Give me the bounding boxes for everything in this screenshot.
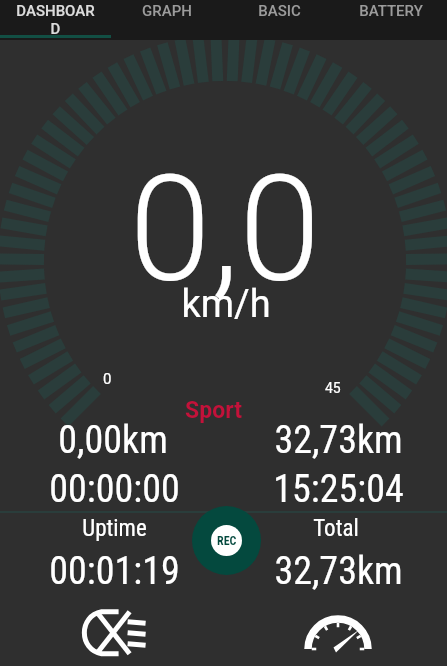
staticText: REC — [217, 534, 237, 548]
button[interactable]: Headlights off — [72, 602, 148, 658]
staticText: BATTERY — [359, 2, 423, 20]
button[interactable]: Record — [192, 506, 261, 575]
button[interactable]: GRAPH — [111, 0, 223, 40]
staticText: 0,00km — [58, 418, 168, 463]
staticText: DASHBOARD — [12, 2, 99, 38]
staticText: BASIC — [258, 2, 301, 20]
button[interactable]: BATTERY — [335, 0, 447, 40]
button[interactable]: DASHBOARD — [0, 0, 111, 40]
staticText: 45 — [325, 380, 341, 396]
staticText: 15:25:04 — [273, 467, 404, 512]
staticText: Sport — [185, 397, 242, 424]
staticText: 32,73km — [274, 549, 403, 594]
staticText: 0,0 — [129, 144, 321, 316]
staticText: Uptime — [82, 515, 147, 542]
staticText: 32,73km — [274, 418, 403, 463]
staticText: Total — [313, 515, 359, 542]
staticText: GRAPH — [142, 2, 192, 20]
staticText: 0 — [103, 370, 112, 388]
staticText: 00:01:19 — [49, 549, 180, 594]
staticText: km/h — [181, 282, 271, 327]
staticText: 00:00:00 — [49, 467, 180, 512]
button[interactable]: Speedometer — [300, 604, 376, 656]
button[interactable]: BASIC — [223, 0, 335, 40]
